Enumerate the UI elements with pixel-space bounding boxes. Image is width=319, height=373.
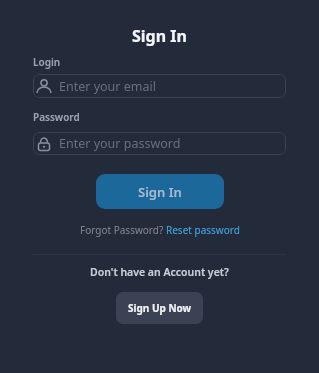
button[interactable]: Enter your email (33, 74, 286, 98)
staticText: Login (33, 55, 61, 69)
staticText: Don't have an Account yet? (90, 265, 229, 279)
button[interactable]: Sign Up Now (116, 292, 203, 324)
staticText: Sign In (138, 183, 182, 201)
staticText: Enter your password (59, 135, 181, 152)
staticText: Sign Up Now (128, 301, 192, 315)
staticText: Forgot Password? (80, 223, 166, 237)
staticText: Password (33, 110, 80, 124)
button[interactable]: Enter your password (33, 132, 286, 155)
staticText: Enter your email (59, 78, 156, 95)
button[interactable]: Reset password (166, 223, 240, 237)
button[interactable]: Sign In (96, 174, 224, 209)
staticText: Sign In (132, 25, 187, 47)
